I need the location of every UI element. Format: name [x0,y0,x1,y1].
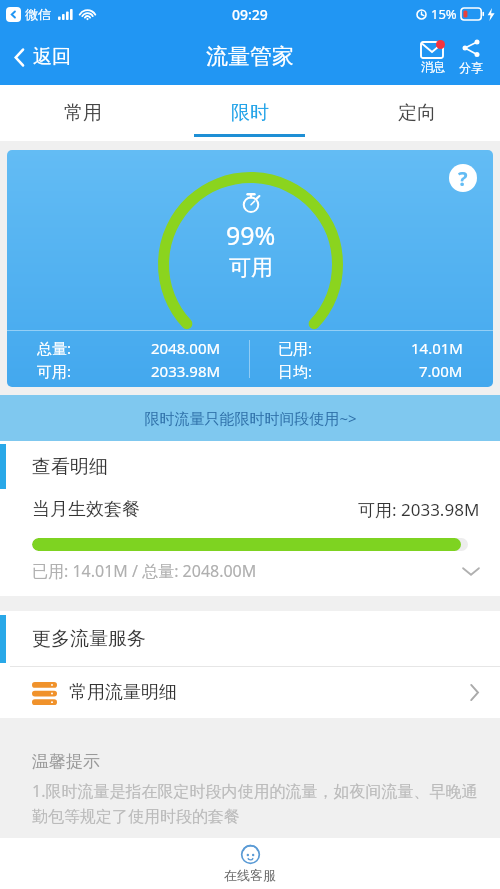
button[interactable]: 定向 [333,85,500,141]
staticText: 温馨提示 [32,751,100,772]
staticText: 已用: 14.01M / 总量: 2048.00M [32,560,257,582]
button[interactable]: 已用: 14.01M / 总量: 2048.00M [0,551,500,591]
staticText: 可用 [229,254,273,282]
staticText: 定向 [398,101,436,125]
staticText: 14.01M [411,338,463,358]
staticText: 可用: [37,361,72,381]
button[interactable]: 消息 [414,37,452,77]
staticText: 当月生效套餐 [32,498,140,521]
staticText: 09:29 [232,5,268,24]
staticText: 分享 [459,60,483,75]
staticText: 99% [226,218,276,252]
staticText: 常用 [64,101,102,125]
staticText: 2048.00M [151,338,221,358]
staticText: 总量: [37,338,72,358]
button[interactable]: 返回 [0,37,85,77]
staticText: 7.00M [419,361,463,381]
button[interactable]: 查看明细 [0,441,500,492]
staticText: ? [458,165,468,192]
button[interactable]: 帮助 [449,164,477,192]
button[interactable]: 常用流量明细 [0,667,500,718]
staticText: 可用: 2033.98M [358,498,480,521]
staticText: 限时流量只能限时时间段使用~> [144,408,357,428]
staticText: 微信 [25,6,51,22]
button[interactable]: 限时流量只能限时时间段使用~> [0,395,500,441]
staticText: 返回 [33,45,71,69]
button[interactable]: 常用 [0,85,166,141]
staticText: 更多流量服务 [32,627,146,651]
staticText: 1.限时流量是指在限定时段内使用的流量，如夜间流量、早晚通勤包等规定了使用时段的… [32,780,484,826]
button[interactable]: 在线客服 [206,841,294,886]
staticText: 在线客服 [224,867,276,883]
staticText: 常用流量明细 [69,681,177,704]
staticText: 2033.98M [151,361,221,381]
staticText: 流量管家 [206,43,294,71]
staticText: 消息 [421,59,445,74]
staticText: 日均: [278,361,313,381]
staticText: 已用: [278,338,313,358]
button[interactable]: 限时 [166,85,333,141]
button[interactable]: 分享 [452,35,490,78]
button[interactable]: 更多流量服务 [0,611,500,666]
staticText: 15% [431,5,457,23]
staticText: 查看明细 [32,455,108,479]
staticText: 限时 [231,101,269,125]
